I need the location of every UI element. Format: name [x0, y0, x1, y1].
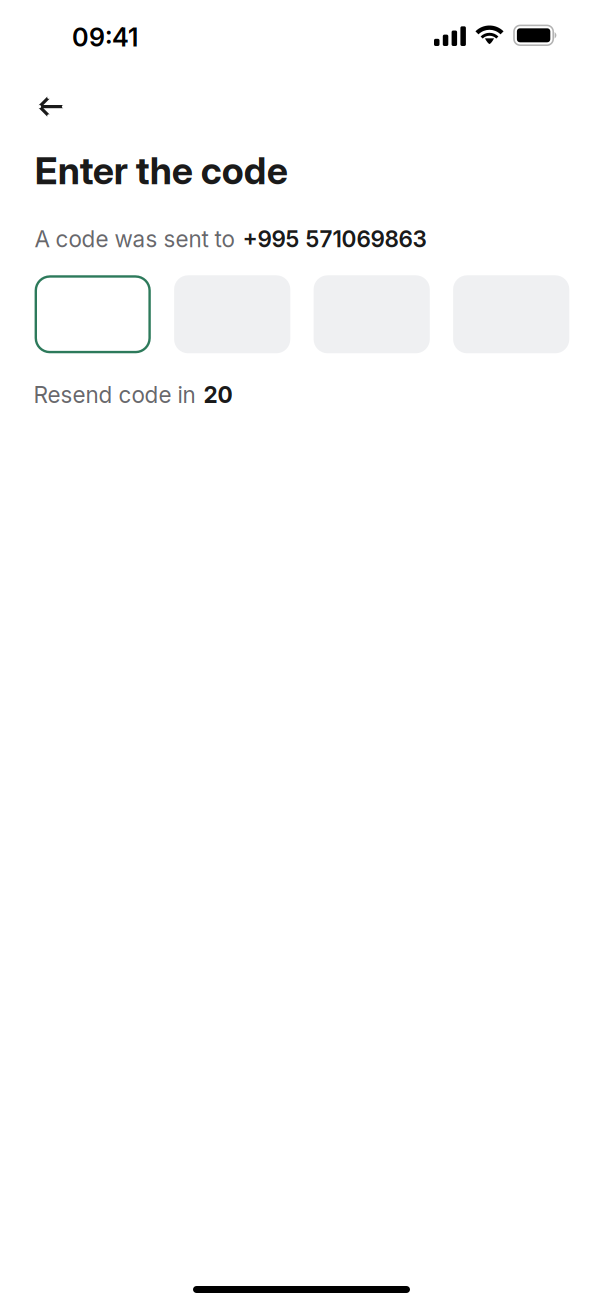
staticText: +995 571069863 — [243, 225, 427, 253]
staticText: Enter the code — [35, 148, 288, 193]
staticText: 20 — [204, 381, 233, 408]
button[interactable]: Code digit 1 — [35, 275, 151, 353]
staticText: Resend code in — [34, 381, 202, 408]
button[interactable]: Back — [22, 70, 81, 118]
staticText: 09:41 — [72, 22, 138, 53]
staticText: A code was sent to — [35, 225, 241, 253]
